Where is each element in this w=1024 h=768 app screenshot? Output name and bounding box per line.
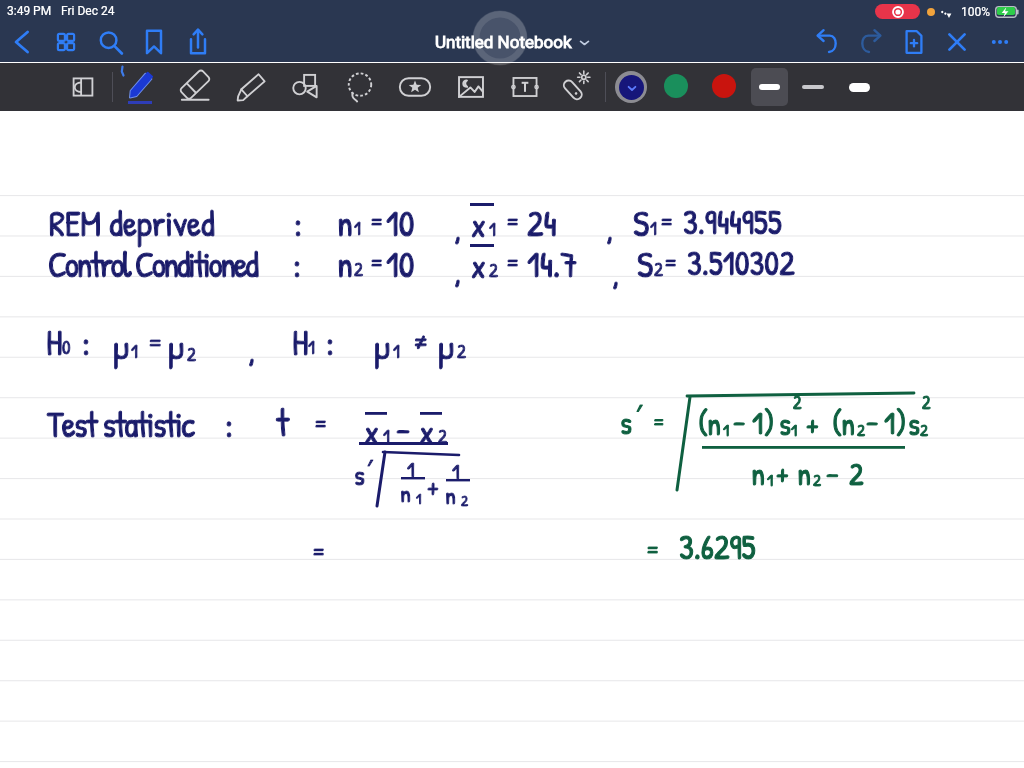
button[interactable]: Green colour (664, 74, 688, 98)
staticText: − (866, 403, 879, 438)
staticText: 1) (884, 402, 907, 444)
staticText: 2 (438, 423, 447, 449)
button[interactable]: Text box (504, 66, 546, 108)
button[interactable]: Highlighter (229, 65, 273, 109)
staticText: x (419, 410, 434, 455)
staticText: n (400, 477, 411, 509)
staticText: 1 (452, 457, 460, 485)
staticText: 1 (416, 488, 422, 508)
button[interactable]: Pages (46, 22, 86, 62)
button[interactable]: Untitled Notebook (435, 32, 590, 52)
staticText: : (225, 401, 234, 448)
staticText: 3.6295 (679, 525, 756, 570)
staticText: + (806, 405, 819, 442)
button[interactable]: Back (2, 22, 42, 62)
button[interactable]: Eraser (173, 65, 217, 109)
staticText: 1 (767, 468, 774, 491)
button[interactable]: Medium stroke, selected (751, 68, 788, 106)
staticText: 1 (407, 455, 415, 483)
staticText: , (454, 205, 462, 252)
button[interactable]: Sticker (393, 65, 437, 109)
button[interactable]: Thin stroke (794, 68, 831, 106)
staticText: = (645, 531, 660, 566)
staticText: 2 (922, 390, 931, 414)
staticText: : (82, 319, 91, 366)
button[interactable]: Undo (807, 22, 847, 62)
button[interactable]: Shapes (283, 65, 327, 109)
staticText: 1 (354, 215, 361, 241)
button[interactable]: Red colour (712, 74, 736, 98)
staticText: = (313, 405, 328, 440)
button[interactable]: Magic wand (553, 65, 597, 109)
staticText: − (733, 403, 746, 438)
staticText: 2 (187, 341, 196, 367)
staticText: + (776, 454, 789, 491)
button[interactable]: New page (894, 22, 934, 62)
button[interactable]: Share (178, 22, 218, 62)
button[interactable]: Search (90, 22, 130, 62)
staticText: , (612, 250, 620, 297)
staticText: 1) (884, 402, 907, 444)
staticText: S (633, 200, 650, 247)
staticText: 1 (791, 418, 798, 441)
staticText: ′ (367, 452, 373, 483)
staticText: μ (374, 324, 391, 370)
staticText: − (396, 408, 411, 449)
staticText: s (620, 402, 632, 444)
staticText: = (369, 203, 384, 238)
staticText: t (276, 396, 290, 447)
staticText: , (248, 327, 256, 374)
staticText: 1) (752, 402, 775, 444)
staticText: 0 (62, 334, 71, 360)
button[interactable]: Close (937, 22, 977, 62)
staticText: 100% (961, 5, 991, 19)
staticText: ′ (636, 396, 642, 430)
staticText: 2 (489, 257, 498, 283)
staticText: n (337, 200, 353, 247)
staticText: , (606, 205, 614, 252)
button[interactable]: Page thumbnail (62, 66, 104, 108)
button[interactable]: Navy colour, selected (615, 71, 647, 103)
staticText: 3.944955 (683, 200, 782, 245)
button[interactable]: Thick stroke (841, 68, 878, 106)
staticText: S (637, 241, 654, 288)
staticText: H (292, 319, 309, 366)
staticText: 2 (438, 423, 447, 449)
staticText: , (454, 248, 462, 295)
staticText: 1 (489, 216, 496, 242)
staticText: 1 (393, 338, 400, 364)
staticText: s (779, 403, 791, 445)
staticText: 24 (527, 200, 557, 247)
staticText: 2 (354, 256, 363, 282)
staticText: 2 (461, 490, 469, 510)
button[interactable]: Redo (851, 22, 891, 62)
button[interactable]: More options (980, 22, 1020, 62)
staticText: = (652, 406, 666, 437)
staticText: 1 (791, 418, 798, 441)
staticText: + (427, 469, 440, 503)
staticText: , (606, 205, 614, 252)
staticText: 1 (767, 468, 774, 491)
staticText: : (82, 319, 91, 366)
staticText: : (294, 200, 303, 247)
button[interactable]: Lasso select (338, 65, 382, 109)
staticText: 1 (393, 338, 400, 364)
staticText: 2 (457, 338, 466, 364)
staticText: ′ (636, 396, 642, 430)
staticText: 3.6295 (679, 525, 756, 570)
staticText: ( (698, 402, 709, 444)
staticText: = (505, 203, 520, 238)
button[interactable]: Pen (117, 64, 163, 110)
staticText: , (454, 205, 462, 252)
button[interactable]: Bookmark (134, 22, 174, 62)
staticText: = (313, 405, 328, 440)
staticText: μ (113, 324, 130, 370)
button[interactable]: Insert image (450, 66, 492, 108)
staticText: : (293, 241, 302, 288)
staticText: n (751, 453, 766, 495)
staticText: 2 (857, 418, 865, 441)
staticText: 1 (308, 334, 315, 360)
staticText: = (505, 244, 520, 279)
staticText: , (248, 327, 256, 374)
button[interactable]: Screen recording (875, 4, 920, 19)
